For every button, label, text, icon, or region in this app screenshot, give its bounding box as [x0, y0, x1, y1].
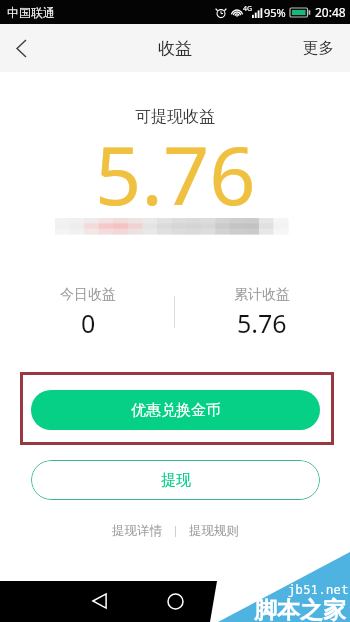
staticText: 更多	[303, 38, 334, 58]
staticText: 5.76	[237, 306, 287, 340]
staticText: 4G	[243, 4, 253, 14]
button[interactable]: 优惠兑换金币	[31, 390, 320, 430]
staticText: 提现详情	[112, 523, 162, 539]
staticText: 今日收益	[60, 286, 116, 304]
staticText: 累计收益	[234, 286, 290, 304]
staticText: 中国联通	[7, 5, 55, 20]
button[interactable]: 提现规则	[176, 519, 247, 543]
button[interactable]: 提现	[31, 460, 320, 500]
staticText: 95%	[264, 5, 286, 20]
button[interactable]: 提现详情	[104, 519, 175, 543]
staticText: 5.76	[95, 118, 256, 228]
staticText: 提现规则	[189, 523, 239, 539]
staticText: 收益	[158, 38, 192, 59]
button[interactable]: 更多	[289, 26, 350, 70]
button[interactable]: Back	[0, 24, 43, 72]
button[interactable]: Home	[157, 583, 193, 619]
staticText: 可提现收益	[135, 107, 215, 127]
staticText: 20:48	[315, 4, 346, 20]
staticText: 优惠兑换金币	[131, 401, 221, 420]
staticText: jb51.net	[288, 581, 349, 597]
staticText: 提现	[161, 471, 191, 490]
staticText: 脚本之家	[254, 596, 346, 622]
button[interactable]: Back	[81, 583, 117, 619]
staticText: 0	[81, 306, 96, 340]
